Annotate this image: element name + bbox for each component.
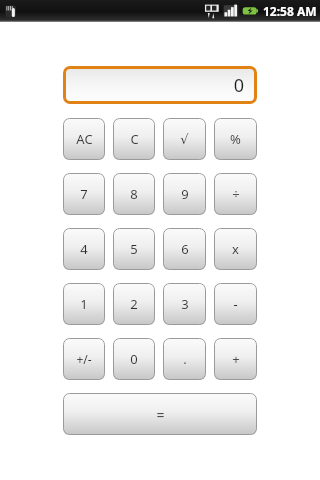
button[interactable]: 9 — [163, 173, 206, 215]
button[interactable]: 3 — [163, 283, 206, 325]
button[interactable]: 0 — [66, 69, 254, 101]
button[interactable]: AC — [63, 118, 105, 160]
button[interactable]: 0 — [113, 338, 155, 380]
button[interactable]: % — [214, 118, 257, 160]
staticText: 9 — [181, 185, 189, 203]
staticText: 1 — [80, 295, 88, 313]
button[interactable]: √ — [163, 118, 206, 160]
staticText: . — [183, 350, 187, 368]
staticText: 5 — [130, 240, 138, 258]
staticText: ÷ — [232, 185, 240, 203]
button[interactable]: 5 — [113, 228, 155, 270]
staticText: 3 — [181, 295, 189, 313]
button[interactable]: +/- — [63, 338, 105, 380]
button[interactable]: C — [113, 118, 155, 160]
button[interactable]: 7 — [63, 173, 105, 215]
staticText: x — [232, 240, 239, 258]
staticText: 8 — [130, 185, 138, 203]
button[interactable]: x — [214, 228, 257, 270]
staticText: = — [156, 405, 165, 424]
staticText: % — [230, 130, 241, 148]
staticText: C — [130, 130, 139, 148]
staticText: 4 — [80, 240, 88, 258]
staticText: AC — [76, 130, 93, 148]
button[interactable]: ÷ — [214, 173, 257, 215]
staticText: - — [233, 295, 238, 313]
staticText: 7 — [80, 185, 88, 203]
staticText: 2 — [130, 295, 138, 313]
staticText: 12:58 AM — [263, 3, 317, 19]
staticText: + — [232, 350, 240, 368]
staticText: 6 — [181, 240, 189, 258]
staticText: 0 — [233, 73, 244, 98]
button[interactable]: + — [214, 338, 257, 380]
button[interactable]: 4 — [63, 228, 105, 270]
staticText: 0 — [130, 350, 138, 368]
button[interactable]: = — [63, 393, 257, 435]
button[interactable]: 8 — [113, 173, 155, 215]
staticText: √ — [180, 132, 189, 147]
staticText: +/- — [76, 351, 92, 367]
button[interactable]: 1 — [63, 283, 105, 325]
button[interactable]: 2 — [113, 283, 155, 325]
button[interactable]: . — [163, 338, 206, 380]
button[interactable]: - — [214, 283, 257, 325]
button[interactable]: 6 — [163, 228, 206, 270]
